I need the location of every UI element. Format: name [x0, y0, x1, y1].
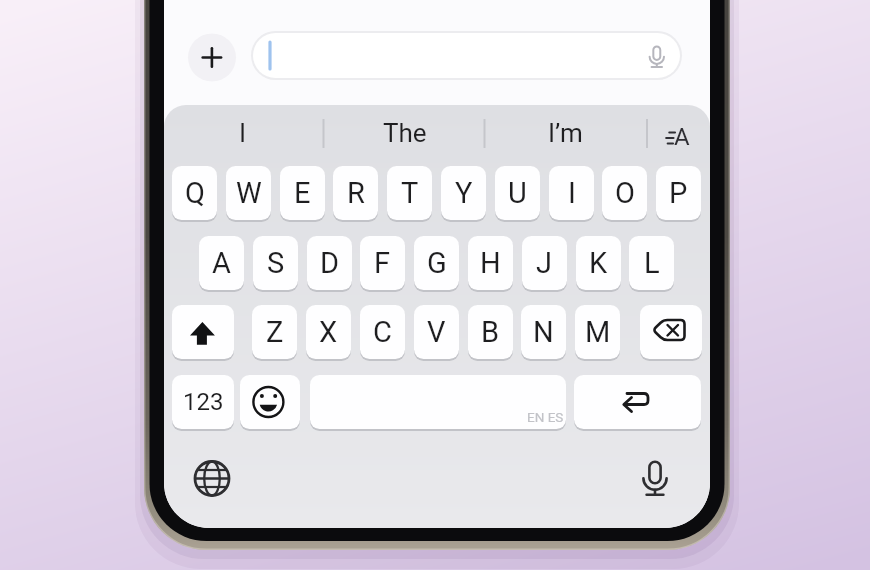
- button[interactable]: X: [306, 305, 351, 359]
- staticText: O: [615, 176, 635, 210]
- button[interactable]: W: [226, 166, 271, 220]
- button[interactable]: [651, 111, 705, 161]
- button[interactable]: U: [495, 166, 540, 220]
- staticText: B: [481, 315, 500, 349]
- button[interactable]: C: [360, 305, 405, 359]
- button[interactable]: I: [168, 108, 318, 158]
- button[interactable]: [251, 31, 682, 80]
- staticText: N: [533, 315, 554, 349]
- staticText: C: [373, 315, 392, 349]
- button[interactable]: O: [602, 166, 647, 220]
- button[interactable]: [637, 33, 679, 79]
- button[interactable]: [631, 450, 679, 500]
- staticText: J: [536, 246, 553, 280]
- button[interactable]: H: [468, 236, 513, 290]
- staticText: Y: [455, 176, 473, 210]
- button[interactable]: S: [253, 236, 298, 290]
- staticText: A: [212, 246, 231, 280]
- staticText: W: [236, 176, 262, 210]
- staticText: L: [644, 246, 660, 280]
- staticText: R: [347, 176, 365, 210]
- staticText: Q: [185, 176, 205, 210]
- button[interactable]: B: [468, 305, 513, 359]
- staticText: I: [568, 176, 576, 210]
- button[interactable]: R: [333, 166, 378, 220]
- staticText: I’m: [548, 118, 583, 148]
- button[interactable]: [188, 34, 236, 82]
- button[interactable]: F: [360, 236, 405, 290]
- button[interactable]: V: [414, 305, 459, 359]
- staticText: K: [589, 246, 608, 280]
- button[interactable]: I: [549, 166, 594, 220]
- button[interactable]: [172, 305, 234, 359]
- staticText: X: [319, 315, 338, 349]
- staticText: A: [674, 123, 690, 151]
- button[interactable]: [310, 375, 566, 429]
- staticText: F: [374, 246, 391, 280]
- staticText: Z: [266, 315, 284, 349]
- staticText: EN ES: [527, 409, 564, 425]
- button[interactable]: The: [330, 108, 480, 158]
- button[interactable]: Q: [172, 166, 217, 220]
- button[interactable]: T: [387, 166, 432, 220]
- staticText: P: [669, 176, 688, 210]
- button[interactable]: [574, 375, 701, 429]
- staticText: U: [508, 176, 527, 210]
- staticText: I: [239, 118, 247, 148]
- button[interactable]: 123: [172, 375, 234, 429]
- staticText: E: [294, 176, 311, 210]
- button[interactable]: P: [656, 166, 701, 220]
- staticText: M: [585, 315, 611, 349]
- button[interactable]: J: [522, 236, 567, 290]
- button[interactable]: [188, 454, 236, 503]
- button[interactable]: [240, 375, 300, 429]
- staticText: T: [401, 176, 419, 210]
- button[interactable]: I’m: [490, 108, 640, 158]
- button[interactable]: K: [576, 236, 621, 290]
- button[interactable]: A: [199, 236, 244, 290]
- staticText: V: [427, 315, 446, 349]
- button[interactable]: Y: [441, 166, 486, 220]
- staticText: G: [427, 246, 447, 280]
- button[interactable]: N: [521, 305, 566, 359]
- staticText: S: [267, 246, 285, 280]
- staticText: H: [480, 246, 501, 280]
- button[interactable]: L: [629, 236, 674, 290]
- button[interactable]: D: [307, 236, 352, 290]
- button[interactable]: Z: [252, 305, 297, 359]
- button[interactable]: M: [575, 305, 620, 359]
- staticText: 123: [183, 388, 224, 416]
- button[interactable]: [640, 305, 702, 359]
- button[interactable]: E: [280, 166, 325, 220]
- button[interactable]: G: [414, 236, 459, 290]
- staticText: D: [320, 246, 340, 280]
- staticText: The: [383, 118, 427, 148]
